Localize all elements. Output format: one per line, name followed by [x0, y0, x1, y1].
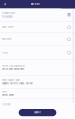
staticText: Submit	[34, 111, 41, 114]
button[interactable]: Choose Date	[0, 8, 75, 22]
staticText: Event	[2, 90, 7, 93]
staticText: Hours	[2, 51, 8, 54]
button[interactable]: Notes (250 characters)	[0, 60, 75, 75]
button[interactable]: Event	[0, 88, 75, 99]
staticText: Add Time	[30, 3, 39, 5]
staticText: Support Activity (Days: online)	[2, 82, 33, 85]
button[interactable]: Back	[0, 0, 9, 8]
staticText: Write your notes here	[2, 68, 24, 70]
staticText: Notes (250 characters)	[2, 65, 25, 67]
staticText: Enter task(if any)	[2, 79, 20, 81]
button[interactable]: Submit	[19, 109, 56, 116]
button[interactable]: Start Time	[0, 22, 75, 33]
staticText: Choose Date	[2, 12, 15, 15]
staticText: Select Event	[2, 94, 14, 96]
staticText: End Time	[2, 38, 11, 41]
button[interactable]: End Time	[0, 33, 75, 46]
staticText: 11/20/2023	[2, 15, 12, 18]
button[interactable]: Enter task(if any)	[0, 75, 75, 88]
staticText: Actions	[2, 103, 10, 106]
button[interactable]: Hours	[0, 46, 75, 60]
staticText: Start Time	[2, 26, 13, 29]
